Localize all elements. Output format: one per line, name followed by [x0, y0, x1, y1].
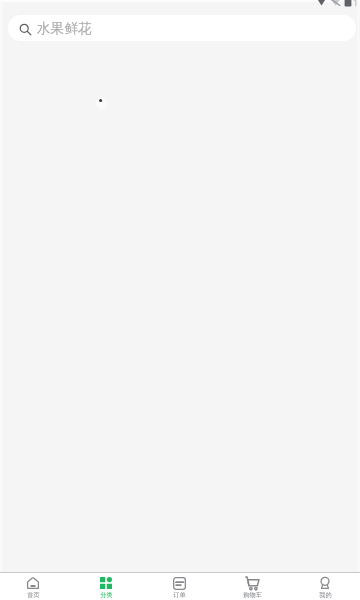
button[interactable]: 订单: [143, 573, 215, 600]
button[interactable]: Search: [8, 15, 356, 41]
staticText: 订单: [173, 591, 186, 599]
staticText: 水果鲜花: [37, 20, 92, 37]
button[interactable]: 购物车: [216, 573, 288, 600]
staticText: 购物车: [243, 591, 262, 599]
staticText: 分类: [100, 591, 113, 599]
button[interactable]: 分类: [70, 573, 142, 600]
other: Search: [19, 23, 31, 35]
staticText: 我的: [319, 591, 332, 599]
button[interactable]: 我的: [289, 573, 360, 600]
staticText: 首页: [27, 591, 40, 599]
button[interactable]: 首页: [0, 573, 69, 600]
